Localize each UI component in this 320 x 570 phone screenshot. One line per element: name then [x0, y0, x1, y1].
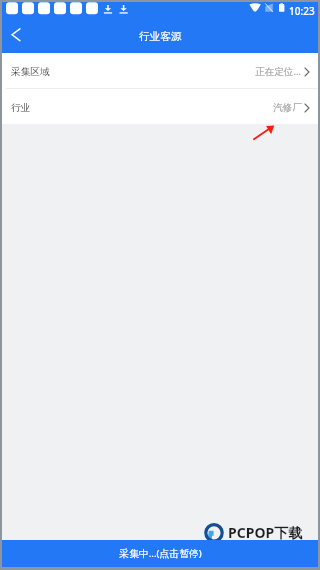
button[interactable]: 采集中...(点击暂停) — [2, 540, 318, 567]
button[interactable]: 采集区域 — [2, 53, 318, 88]
button[interactable]: 行业 — [2, 89, 318, 124]
button[interactable]: Back — [2, 20, 34, 53]
staticText: 行业客源 — [139, 30, 182, 43]
staticText: 采集区域 — [11, 66, 50, 78]
staticText: 10:23 — [289, 4, 315, 18]
staticText: 采集中...(点击暂停) — [119, 547, 202, 560]
staticText: 正在定位... — [255, 65, 302, 78]
staticText: PCPOP下载 — [228, 523, 303, 542]
staticText: 汽修厂 — [273, 102, 302, 114]
staticText: 行业 — [11, 102, 31, 114]
